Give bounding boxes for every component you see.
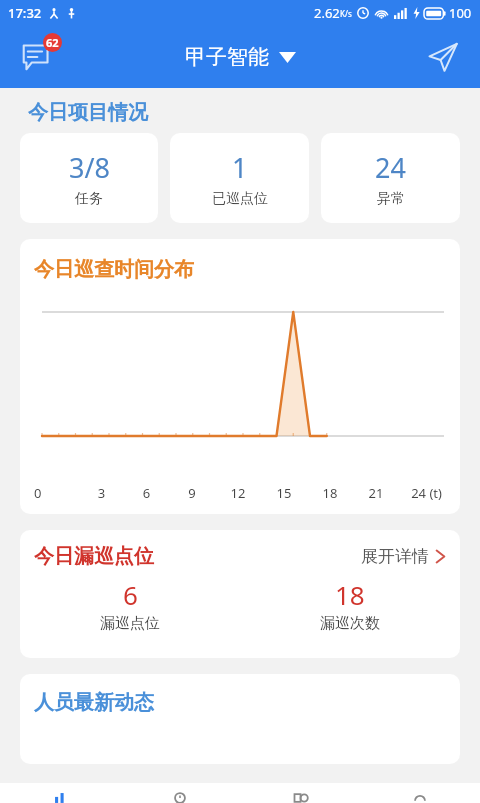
button[interactable]: 1 [170, 133, 309, 223]
staticText: 3/8 [69, 149, 110, 186]
button[interactable]: 24 [321, 133, 460, 223]
staticText: 18 [307, 484, 353, 502]
button[interactable]: 甲子智能 [185, 44, 296, 70]
button[interactable]: Send [420, 34, 466, 80]
staticText: 1 [232, 149, 248, 186]
staticText: 15 [261, 484, 307, 502]
staticText: 2.62 [314, 4, 340, 22]
staticText: 异常 [377, 190, 405, 208]
button[interactable]: Tab [360, 783, 480, 803]
staticText: 漏巡次数 [320, 614, 380, 633]
staticText: 已巡点位 [212, 190, 268, 208]
staticText: 100 [449, 4, 472, 22]
staticText: 9 [169, 484, 215, 502]
staticText: 62 [46, 35, 59, 50]
button[interactable]: Messages [12, 31, 64, 83]
staticText: 展开详情 [361, 546, 429, 567]
button[interactable]: 6 [20, 577, 240, 633]
staticText: 12 [215, 484, 261, 502]
staticText: K/s [340, 8, 352, 19]
staticText: 3 [79, 484, 124, 502]
staticText: 漏巡点位 [100, 614, 160, 633]
button[interactable]: Tab [240, 783, 360, 803]
staticText: 0 [34, 484, 79, 502]
staticText: 人员最新动态 [34, 690, 154, 715]
button[interactable]: 展开详情 [361, 546, 446, 567]
button[interactable]: 18 [240, 577, 460, 633]
button[interactable]: Tab [120, 783, 240, 803]
button[interactable]: Home tab [0, 783, 120, 803]
staticText: 24 [375, 149, 406, 186]
staticText: 18 [335, 577, 365, 612]
staticText: 今日项目情况 [28, 100, 148, 125]
button[interactable]: 人员最新动态 [20, 674, 460, 764]
staticText: 24 (t) [399, 484, 454, 502]
staticText: 任务 [75, 190, 103, 208]
staticText: 17:32 [8, 4, 42, 22]
staticText: 今日巡查时间分布 [34, 257, 194, 282]
button[interactable]: 今日巡查时间分布 [20, 239, 460, 514]
staticText: 甲子智能 [185, 44, 269, 70]
staticText: 今日漏巡点位 [34, 544, 154, 569]
staticText: 6 [124, 484, 169, 502]
staticText: 21 [353, 484, 399, 502]
button[interactable]: 3/8 [20, 133, 158, 223]
staticText: 6 [123, 577, 138, 612]
